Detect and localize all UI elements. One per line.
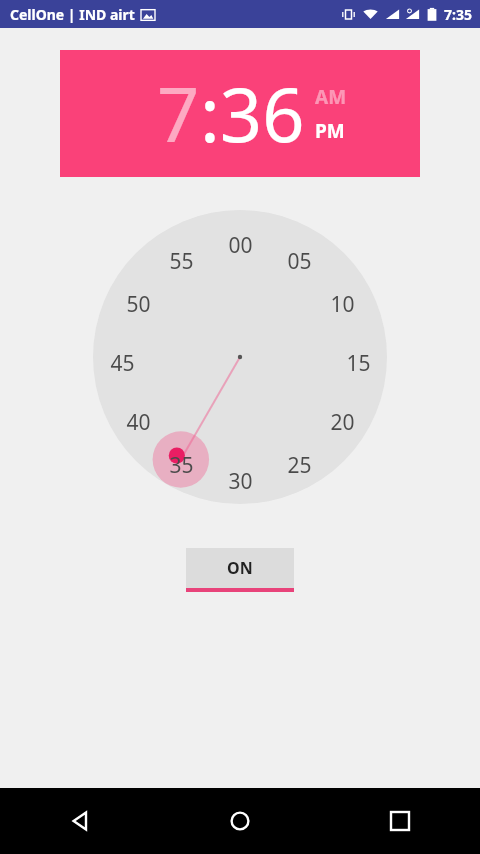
staticText: PM [315, 118, 345, 144]
staticText: AM [315, 84, 347, 110]
staticText: 40 [126, 408, 151, 437]
staticText: :36 [200, 63, 305, 164]
staticText: 25 [287, 451, 312, 480]
staticText: CellOne | IND airt [10, 5, 135, 24]
button[interactable]: Minute picker dial [93, 210, 387, 504]
staticText: 7:35 [444, 5, 472, 24]
button[interactable]: PM [315, 118, 345, 144]
button[interactable]: Home [160, 788, 320, 854]
staticText: 35 [169, 451, 194, 480]
button[interactable]: AM [315, 84, 347, 110]
staticText: 30 [228, 467, 253, 496]
button[interactable]: 7 [60, 50, 420, 177]
staticText: ON [227, 557, 253, 579]
staticText: 45 [110, 349, 135, 378]
staticText: 50 [126, 290, 151, 319]
staticText: 55 [169, 247, 194, 276]
button[interactable]: ON [186, 548, 294, 588]
staticText: 7 [157, 63, 200, 164]
staticText: 05 [287, 247, 312, 276]
button[interactable]: Back [0, 788, 160, 854]
staticText: 20 [330, 408, 355, 437]
button[interactable]: Recent apps [320, 788, 480, 854]
staticText: 10 [330, 290, 355, 319]
staticText: 00 [228, 231, 253, 260]
staticText: 15 [346, 349, 371, 378]
